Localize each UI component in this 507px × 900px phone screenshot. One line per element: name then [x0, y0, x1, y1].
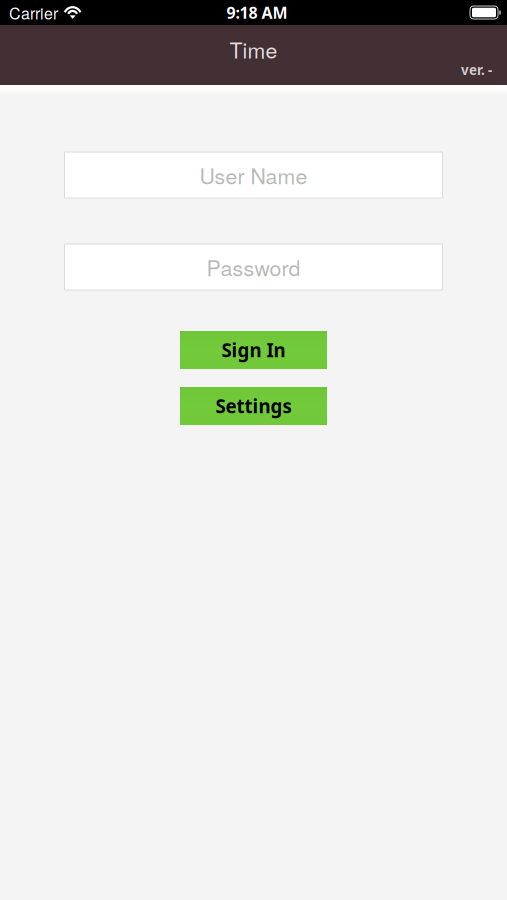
staticText: Password: [206, 252, 300, 282]
staticText: User Name: [199, 160, 307, 190]
staticText: 9:18 AM: [226, 2, 287, 23]
button[interactable]: User Name: [64, 152, 442, 198]
button[interactable]: Password: [64, 244, 442, 290]
staticText: ver. -: [461, 61, 492, 79]
button[interactable]: Sign In: [180, 331, 327, 369]
staticText: Carrier: [9, 1, 58, 24]
staticText: Settings: [215, 393, 291, 419]
button[interactable]: Settings: [180, 387, 327, 425]
staticText: Time: [229, 34, 277, 64]
staticText: Sign In: [221, 337, 285, 363]
